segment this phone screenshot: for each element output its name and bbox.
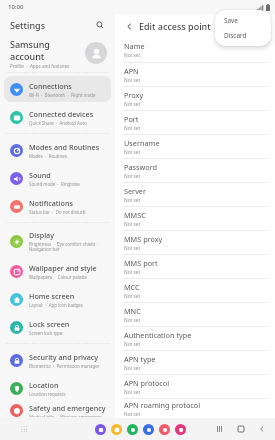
button[interactable]: Password [115,159,275,182]
staticText: MMS port [124,258,158,268]
button[interactable]: Discard [215,28,271,43]
staticText: APN protocol [124,378,170,388]
staticText: Not set [124,245,141,252]
staticText: Display [29,230,54,240]
staticText: Screen lock type [29,330,63,336]
staticText: Sound mode · Ringtone [29,181,80,187]
button[interactable]: MMS port [115,255,275,278]
staticText: Biometrics · Permission manager [29,363,100,369]
button[interactable]: Samsung account [0,36,115,70]
button[interactable]: APN protocol [115,375,275,398]
staticText: Not set [124,411,141,418]
button[interactable]: Location [4,375,111,401]
staticText: Wallpaper and style [29,263,97,273]
staticText: Not set [124,52,141,59]
staticText: MNC [124,306,141,316]
button[interactable]: Back [122,19,136,33]
button[interactable]: Wallpaper and style [4,258,111,284]
staticText: Sound [29,170,51,180]
staticText: Settings [10,19,46,31]
button[interactable]: Sound [4,165,111,191]
staticText: Location [29,380,59,390]
staticText: Not set [124,365,141,372]
staticText: Not set [124,269,141,276]
staticText: Location requests [29,391,66,397]
button[interactable]: Safety and emergency [4,403,111,417]
button[interactable]: App 6 [175,424,186,435]
staticText: MMSC [124,210,146,220]
staticText: Password [124,162,158,172]
staticText: Home screen [29,291,75,301]
staticText: Proxy [124,90,144,100]
button[interactable]: Authentication type [115,327,275,350]
staticText: Modes and Routines [29,142,100,152]
button[interactable]: MMS proxy [115,231,275,254]
staticText: Save [224,16,238,25]
staticText: MCC [124,282,140,292]
staticText: Edit access point [139,20,211,32]
button[interactable]: APN roaming protocol [115,399,275,418]
button[interactable]: Server [115,183,275,206]
button[interactable]: App 4 [143,424,154,435]
button[interactable]: App 3 [127,424,138,435]
button[interactable]: Security and privacy [4,347,111,373]
staticText: Samsung account [10,38,85,62]
staticText: Authentication type [124,330,192,340]
staticText: Name [124,41,145,51]
staticText: Quick Share · Android Auto [29,120,87,126]
button[interactable]: Connections [4,76,111,102]
staticText: Lock screen [29,319,70,329]
button[interactable]: App 1 [95,424,106,435]
staticText: Not set [124,341,141,348]
staticText: Not set [124,197,141,204]
button[interactable]: Save [215,13,271,28]
button[interactable]: Username [115,135,275,158]
staticText: Safety and emergency [29,403,106,413]
staticText: Profile · Apps and features [10,63,70,69]
button[interactable]: Home [235,423,247,435]
staticText: Not set [124,389,141,396]
button[interactable]: Modes and Routines [4,137,111,163]
staticText: APN roaming protocol [124,400,201,410]
staticText: Not set [124,221,141,228]
button[interactable]: Port [115,111,275,134]
staticText: APN [124,66,139,76]
button[interactable]: MNC [115,303,275,326]
staticText: MMS proxy [124,234,163,244]
button[interactable]: Name [115,38,275,62]
staticText: Wallpapers · Colour palette [29,274,88,280]
button[interactable]: Apps [17,422,31,436]
staticText: Status bar · Do not disturb [29,209,86,215]
button[interactable]: Display [4,226,111,256]
button[interactable]: Proxy [115,87,275,110]
staticText: APN type [124,354,156,364]
staticText: Wi-Fi · Bluetooth · Flight mode [29,92,96,98]
button[interactable]: MCC [115,279,275,302]
button[interactable]: Connected devices [4,104,111,130]
button[interactable]: Lock screen [4,314,111,340]
button[interactable]: APN [115,63,275,86]
staticText: Layout · App icon badges [29,302,83,308]
button[interactable]: App 2 [111,424,122,435]
button[interactable]: Back [256,423,268,435]
button[interactable]: MMSC [115,207,275,230]
staticText: Not set [124,317,141,324]
staticText: Connected devices [29,109,94,119]
button[interactable]: Home screen [4,286,111,312]
staticText: Modes · Routines [29,153,67,159]
staticText: Medical info · Wireless emergency alerts [29,414,102,417]
staticText: Not set [124,101,141,108]
button[interactable]: App 5 [159,424,170,435]
staticText: Security and privacy [29,352,99,362]
staticText: Not set [124,77,141,84]
staticText: Server [124,186,146,196]
staticText: Username [124,138,160,148]
button[interactable]: APN type [115,351,275,374]
button[interactable]: Notifications [4,193,111,219]
staticText: Not set [124,125,141,132]
button[interactable]: Search [93,18,107,32]
staticText: Discard [224,31,247,40]
staticText: 10:00 [8,3,24,11]
button[interactable]: Recents [214,423,226,435]
staticText: Not set [124,293,141,300]
